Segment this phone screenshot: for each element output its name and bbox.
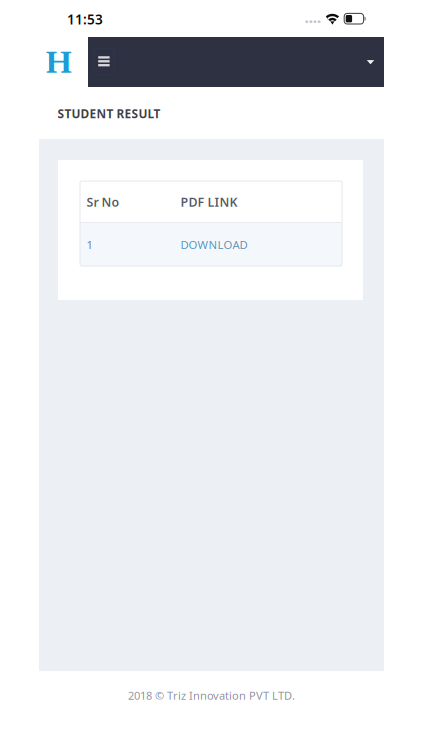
- button[interactable]: DOWNLOAD: [180, 237, 247, 252]
- staticText: STUDENT RESULT: [58, 105, 161, 122]
- staticText: PDF LINK: [180, 194, 237, 210]
- staticText: 11:53: [67, 10, 103, 28]
- staticText: DOWNLOAD: [180, 237, 247, 252]
- staticText: 1: [86, 237, 92, 252]
- staticText: H: [45, 44, 73, 83]
- button[interactable]: Menu: [93, 48, 114, 74]
- button[interactable]: Home: [45, 44, 71, 70]
- staticText: 2018 © Triz Innovation PVT LTD.: [128, 688, 295, 703]
- button[interactable]: Open account menu: [361, 53, 379, 71]
- staticText: Sr No: [86, 194, 119, 210]
